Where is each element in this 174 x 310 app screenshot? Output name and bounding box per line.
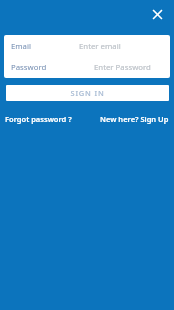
button[interactable]: SIGN IN (6, 85, 169, 101)
staticText: Enter email (79, 41, 121, 52)
staticText: Email (11, 41, 32, 52)
button[interactable]: Email (4, 35, 170, 57)
button[interactable]: Forgot password ? (5, 112, 72, 126)
staticText: SIGN IN (70, 88, 105, 98)
button[interactable]: Close (148, 5, 167, 24)
staticText: Forgot password ? (5, 114, 72, 124)
staticText: Password (11, 62, 47, 73)
button[interactable]: Password (4, 57, 170, 78)
staticText: New here? Sign Up (100, 114, 169, 124)
staticText: Enter Password (94, 62, 151, 73)
button[interactable]: New here? Sign Up (100, 112, 169, 126)
